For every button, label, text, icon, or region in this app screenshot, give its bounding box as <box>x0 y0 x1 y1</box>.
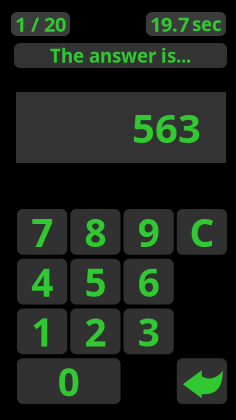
staticText: 7 <box>31 206 53 257</box>
button[interactable]: 19.7 <box>146 12 226 36</box>
staticText: 3 <box>138 306 160 357</box>
button[interactable]: 3 <box>123 308 174 354</box>
staticText: 1 <box>31 306 53 357</box>
button[interactable]: 1 <box>17 308 67 354</box>
staticText: 0 <box>58 355 80 407</box>
staticText: 8 <box>84 206 106 257</box>
staticText: The answer is... <box>50 43 191 68</box>
button[interactable]: 0 <box>17 358 120 404</box>
staticText: 2 <box>84 306 106 357</box>
button[interactable]: 4 <box>17 259 67 305</box>
button[interactable]: 6 <box>123 259 174 305</box>
staticText: 6 <box>138 256 160 307</box>
button[interactable]: 2 <box>70 308 120 354</box>
button[interactable]: 7 <box>17 209 67 255</box>
button[interactable]: 8 <box>70 209 120 255</box>
button[interactable]: 1 / 20 <box>11 12 70 36</box>
staticText: 4 <box>31 256 53 307</box>
button[interactable]: 5 <box>70 259 120 305</box>
staticText: sec <box>192 12 222 36</box>
staticText: 563 <box>132 101 201 154</box>
staticText: C <box>189 206 214 257</box>
staticText: 19.7 <box>150 11 189 37</box>
staticText: 1 / 20 <box>15 11 66 37</box>
staticText: 5 <box>84 256 106 307</box>
staticText: 9 <box>138 206 160 257</box>
button[interactable]: C <box>177 209 227 255</box>
button[interactable]: 9 <box>123 209 174 255</box>
button[interactable]: Enter <box>177 358 227 404</box>
